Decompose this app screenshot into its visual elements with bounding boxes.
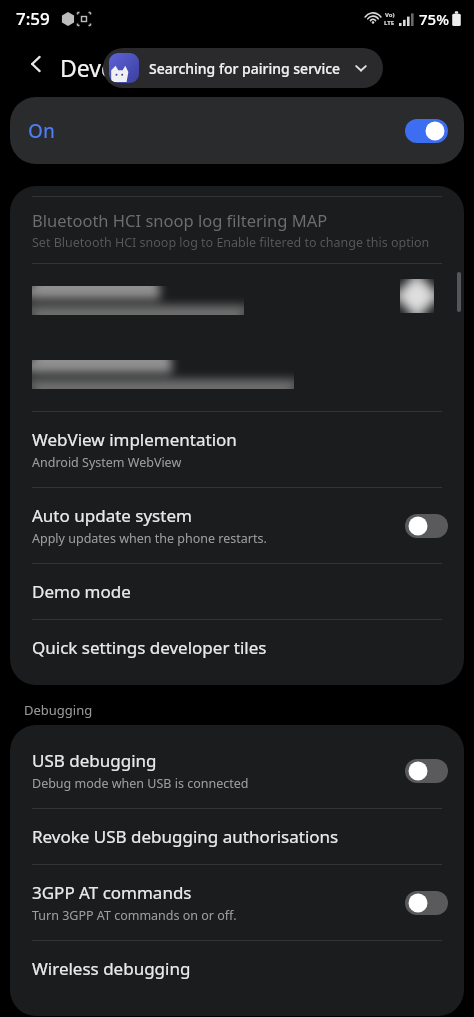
- button[interactable]: WebView implementation: [10, 412, 464, 487]
- staticText: Demo mode: [32, 580, 131, 603]
- staticText: Set Bluetooth HCI snoop log to Enable fi…: [32, 234, 430, 251]
- staticText: WebView implementation: [32, 428, 237, 451]
- button[interactable]: Back: [16, 43, 58, 85]
- staticText: LTE: [384, 19, 395, 27]
- staticText: Developer options: [60, 52, 258, 83]
- button[interactable]: Searching for pairing service: [103, 48, 383, 88]
- button[interactable]: 3GPP AT commands: [10, 865, 464, 940]
- button[interactable]: USB debugging: [10, 733, 464, 808]
- button[interactable]: Bluetooth HCI snoop log filtering MAP: [10, 197, 464, 263]
- staticText: Debugging: [24, 701, 93, 719]
- button[interactable]: Revoke USB debugging authorisations: [10, 809, 464, 864]
- staticText: Quick settings developer tiles: [32, 636, 267, 659]
- staticText: 75%: [419, 9, 449, 29]
- staticText: Apply updates when the phone restarts.: [32, 530, 267, 547]
- staticText: Auto update system: [32, 504, 192, 527]
- button[interactable]: [10, 264, 464, 337]
- staticText: USB debugging: [32, 749, 157, 772]
- staticText: Searching for pairing service: [149, 59, 341, 78]
- staticText: Wireless debugging: [32, 957, 191, 980]
- button[interactable]: Wireless debugging: [10, 941, 464, 996]
- staticText: Revoke USB debugging authorisations: [32, 825, 339, 848]
- staticText: 3GPP AT commands: [32, 881, 192, 904]
- button[interactable]: Auto update system: [10, 488, 464, 563]
- button[interactable]: Quick settings developer tiles: [10, 620, 464, 675]
- button[interactable]: On: [10, 97, 464, 164]
- staticText: 7:59: [16, 7, 50, 30]
- staticText: Vo): [385, 11, 395, 19]
- staticText: Debug mode when USB is connected: [32, 775, 249, 792]
- button[interactable]: [10, 338, 464, 411]
- staticText: Bluetooth HCI snoop log filtering MAP: [32, 209, 328, 231]
- staticText: On: [28, 118, 55, 144]
- staticText: Turn 3GPP AT commands on or off.: [32, 907, 237, 924]
- button[interactable]: Demo mode: [10, 564, 464, 619]
- staticText: Android System WebView: [32, 454, 182, 471]
